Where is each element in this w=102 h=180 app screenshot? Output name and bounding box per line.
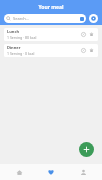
staticText: Search... [13,16,80,21]
button[interactable]: Favourites [38,164,64,180]
staticText: Your meal [38,4,64,11]
button[interactable]: Search... [4,14,86,23]
button[interactable]: Filter [89,14,98,23]
button[interactable]: Add meal [79,142,94,157]
staticText: 1 Serving · 0 kcal [7,51,35,56]
button[interactable]: Dinner [4,44,98,57]
button[interactable]: Delete [88,47,95,54]
button[interactable]: Profile [70,164,96,180]
staticText: Lunch [7,29,20,34]
button[interactable]: Delete [88,31,95,38]
button[interactable]: Edit [80,31,87,38]
staticText: Dinner [7,45,21,50]
button[interactable]: Edit [80,47,87,54]
button[interactable]: Lunch [4,28,98,41]
button[interactable]: Voice search [80,17,84,21]
staticText: 1 Serving · 80 kcal [7,35,37,40]
button[interactable]: Home [6,164,32,180]
